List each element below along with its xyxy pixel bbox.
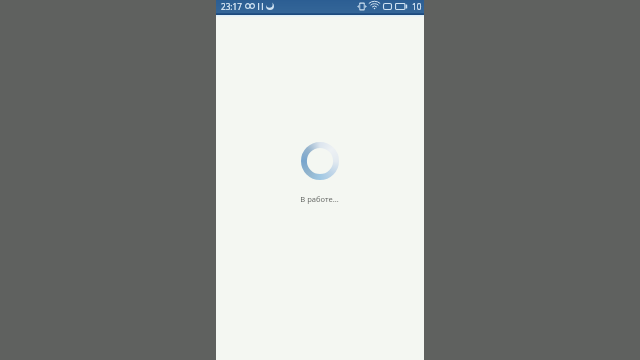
other: Unlimited data [245,3,255,9]
other: Battery 10 percent [395,3,408,10]
other: Wi-Fi [369,2,380,10]
other: Do not disturb [266,2,274,10]
other: Screen cast [383,3,392,10]
other: Vibrate [357,2,367,11]
other: Paused [258,3,263,10]
staticText: В работе… [300,194,339,204]
button[interactable]: Loading [216,0,424,360]
other: Loading [301,142,339,180]
staticText: 10 [412,1,422,12]
staticText: 23:17 [221,1,242,12]
